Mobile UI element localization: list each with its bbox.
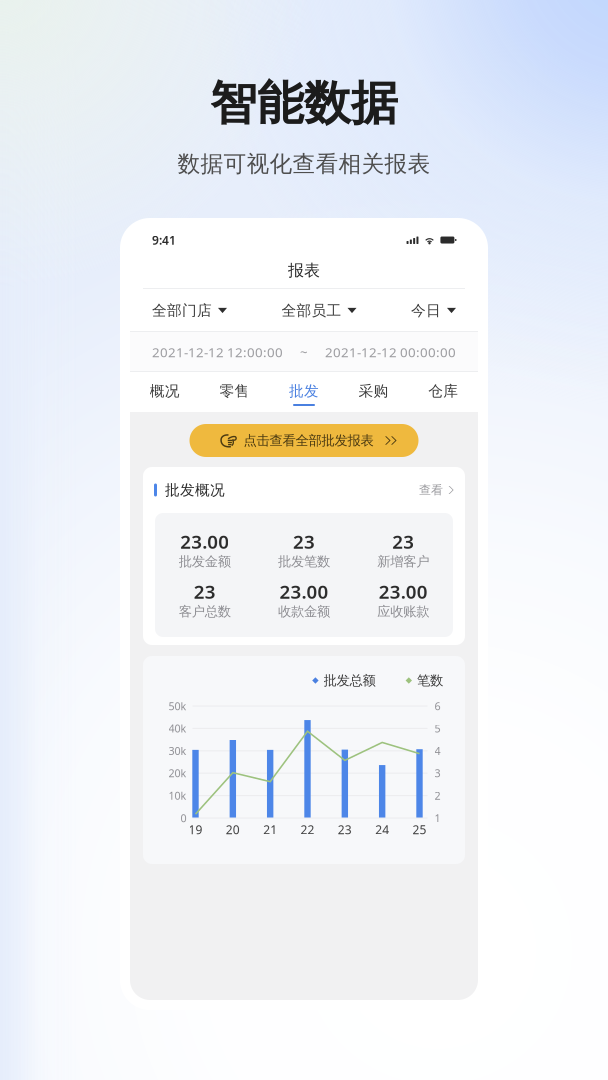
button[interactable]: 全部门店 <box>152 296 227 324</box>
staticText: 0 <box>180 811 186 825</box>
staticText: 点击查看全部批发报表 <box>243 432 373 449</box>
staticText: 23 <box>392 529 414 554</box>
staticText: 批发金额 <box>179 553 231 570</box>
staticText: 21 <box>263 821 277 837</box>
staticText: 23.00 <box>379 579 428 604</box>
staticText: 采购 <box>359 382 389 400</box>
staticText: 23 <box>338 821 352 837</box>
staticText: 批发总额 <box>324 672 376 689</box>
staticText: 仓库 <box>428 382 458 400</box>
staticText: 25 <box>412 821 426 837</box>
staticText: 批发概况 <box>165 481 225 499</box>
staticText: 应收账款 <box>377 603 429 620</box>
staticText: ~ <box>300 343 308 361</box>
staticText: 2021-12-12 00:00:00 <box>325 343 456 361</box>
button[interactable]: 今日 <box>411 296 456 324</box>
staticText: 20k <box>168 766 186 780</box>
staticText: 30k <box>168 744 186 758</box>
button[interactable]: 仓库 <box>408 372 478 412</box>
staticText: 2021-12-12 12:00:00 <box>152 343 283 361</box>
button[interactable]: 查看 <box>419 483 455 497</box>
staticText: 19 <box>188 821 202 837</box>
button[interactable]: 全部员工 <box>281 296 356 324</box>
staticText: 数据可视化查看相关报表 <box>177 150 430 178</box>
staticText: 1 <box>434 811 440 825</box>
staticText: 9:41 <box>152 232 176 248</box>
staticText: 全部门店 <box>152 301 212 319</box>
staticText: 新增客户 <box>377 553 429 570</box>
staticText: 客户总数 <box>179 603 231 620</box>
staticText: 批发 <box>289 382 319 400</box>
staticText: 6 <box>434 699 440 713</box>
staticText: 23.00 <box>279 579 328 604</box>
button[interactable]: 采购 <box>339 372 408 412</box>
staticText: 23.00 <box>180 529 229 554</box>
staticText: 批发笔数 <box>278 553 330 570</box>
staticText: 智能数据 <box>210 75 398 132</box>
button[interactable]: 批发 <box>269 372 339 412</box>
staticText: 10k <box>168 788 186 803</box>
staticText: 4 <box>434 744 440 758</box>
staticText: 22 <box>300 821 314 837</box>
staticText: 零售 <box>219 382 249 400</box>
staticText: 全部员工 <box>281 301 341 319</box>
staticText: 2 <box>434 788 440 803</box>
staticText: 今日 <box>411 301 441 319</box>
button[interactable]: 概况 <box>130 372 200 412</box>
staticText: 23 <box>194 579 216 604</box>
staticText: 笔数 <box>417 672 443 689</box>
button[interactable]: 点击查看全部批发报表 <box>189 424 418 457</box>
staticText: 40k <box>168 721 186 735</box>
staticText: 概况 <box>150 382 180 400</box>
staticText: 23 <box>293 529 315 554</box>
staticText: 收款金额 <box>278 603 330 620</box>
staticText: 5 <box>434 721 440 735</box>
staticText: 3 <box>434 766 440 780</box>
staticText: 查看 <box>419 483 443 497</box>
button[interactable]: 零售 <box>200 372 269 412</box>
staticText: 24 <box>375 821 389 837</box>
staticText: 20 <box>226 821 240 837</box>
staticText: 50k <box>168 699 186 713</box>
staticText: 报表 <box>288 261 320 280</box>
